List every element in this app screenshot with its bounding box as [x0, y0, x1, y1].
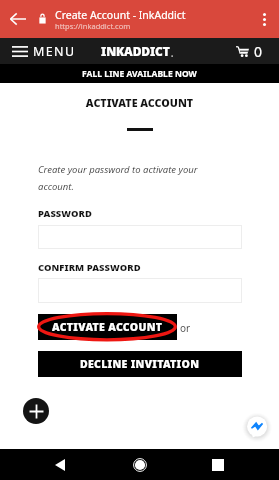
button[interactable]: Home [124, 449, 155, 480]
staticText: Create Account - InkAddict [55, 8, 186, 22]
staticText: . [171, 48, 174, 59]
button[interactable] [38, 225, 242, 249]
button[interactable] [38, 278, 242, 303]
button[interactable]: Back [44, 449, 75, 480]
staticText: INKADDICT [101, 43, 170, 59]
button[interactable]: MENU [12, 43, 76, 60]
button[interactable]: Back [4, 5, 32, 33]
staticText: FALL LINE AVAILABLE NOW [82, 68, 197, 80]
button[interactable]: Chat with us on Messenger [244, 411, 270, 437]
staticText: ACTIVATE ACCOUNT [0, 96, 279, 111]
button[interactable]: ACTIVATE ACCOUNT [38, 314, 177, 340]
staticText: PASSWORD [38, 207, 92, 220]
button[interactable]: DECLINE INVITATION [38, 351, 242, 377]
staticText: or [180, 321, 191, 335]
staticText: CONFIRM PASSWORD [38, 261, 141, 274]
button[interactable]: More options [251, 6, 277, 32]
button[interactable]: FALL LINE AVAILABLE NOW [0, 64, 279, 83]
button[interactable]: Add [23, 398, 49, 424]
staticText: ACTIVATE ACCOUNT [52, 320, 163, 334]
staticText: 0 [254, 42, 263, 61]
button[interactable]: InkAddict home [101, 43, 173, 59]
staticText: Create your password to activate your ac… [38, 163, 206, 193]
button[interactable]: Recent apps [202, 449, 233, 480]
staticText: DECLINE INVITATION [80, 357, 200, 371]
staticText: MENU [33, 43, 76, 60]
button[interactable]: Cart [236, 42, 263, 61]
staticText: https://inkaddict.com [55, 21, 131, 31]
